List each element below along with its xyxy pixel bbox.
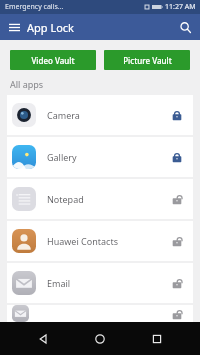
staticText: Huawei Contacts: [47, 235, 166, 247]
button[interactable]: Email: [7, 263, 193, 303]
button[interactable]: Locked: [166, 104, 188, 126]
button[interactable]: Menu: [4, 17, 24, 37]
button[interactable]: Video Vault: [10, 50, 96, 70]
button[interactable]: Unlocked: [166, 188, 188, 210]
button[interactable]: Unlocked: [166, 305, 188, 322]
button[interactable]: Unlocked: [7, 305, 193, 322]
staticText: Gallery: [47, 151, 166, 163]
button[interactable]: Unlocked: [166, 230, 188, 252]
staticText: 11:27 AM: [165, 2, 196, 12]
staticText: Picture Vault: [123, 55, 172, 66]
staticText: Email: [47, 277, 166, 289]
button[interactable]: Notepad: [7, 179, 193, 219]
button[interactable]: Back: [29, 325, 57, 353]
button[interactable]: Huawei Contacts: [7, 221, 193, 261]
staticText: App Lock: [27, 20, 74, 35]
staticText: All apps: [10, 78, 44, 90]
staticText: Video Vault: [31, 55, 75, 66]
button[interactable]: Camera: [7, 95, 193, 135]
button[interactable]: Recents: [143, 325, 171, 353]
staticText: Camera: [47, 109, 166, 121]
button[interactable]: Home: [86, 325, 114, 353]
button[interactable]: Unlocked: [166, 272, 188, 294]
staticText: Emergency calls...: [5, 2, 64, 12]
button[interactable]: Picture Vault: [104, 50, 190, 70]
button[interactable]: Locked: [166, 146, 188, 168]
button[interactable]: Search: [175, 17, 195, 37]
button[interactable]: Gallery: [7, 137, 193, 177]
staticText: Notepad: [47, 193, 166, 205]
